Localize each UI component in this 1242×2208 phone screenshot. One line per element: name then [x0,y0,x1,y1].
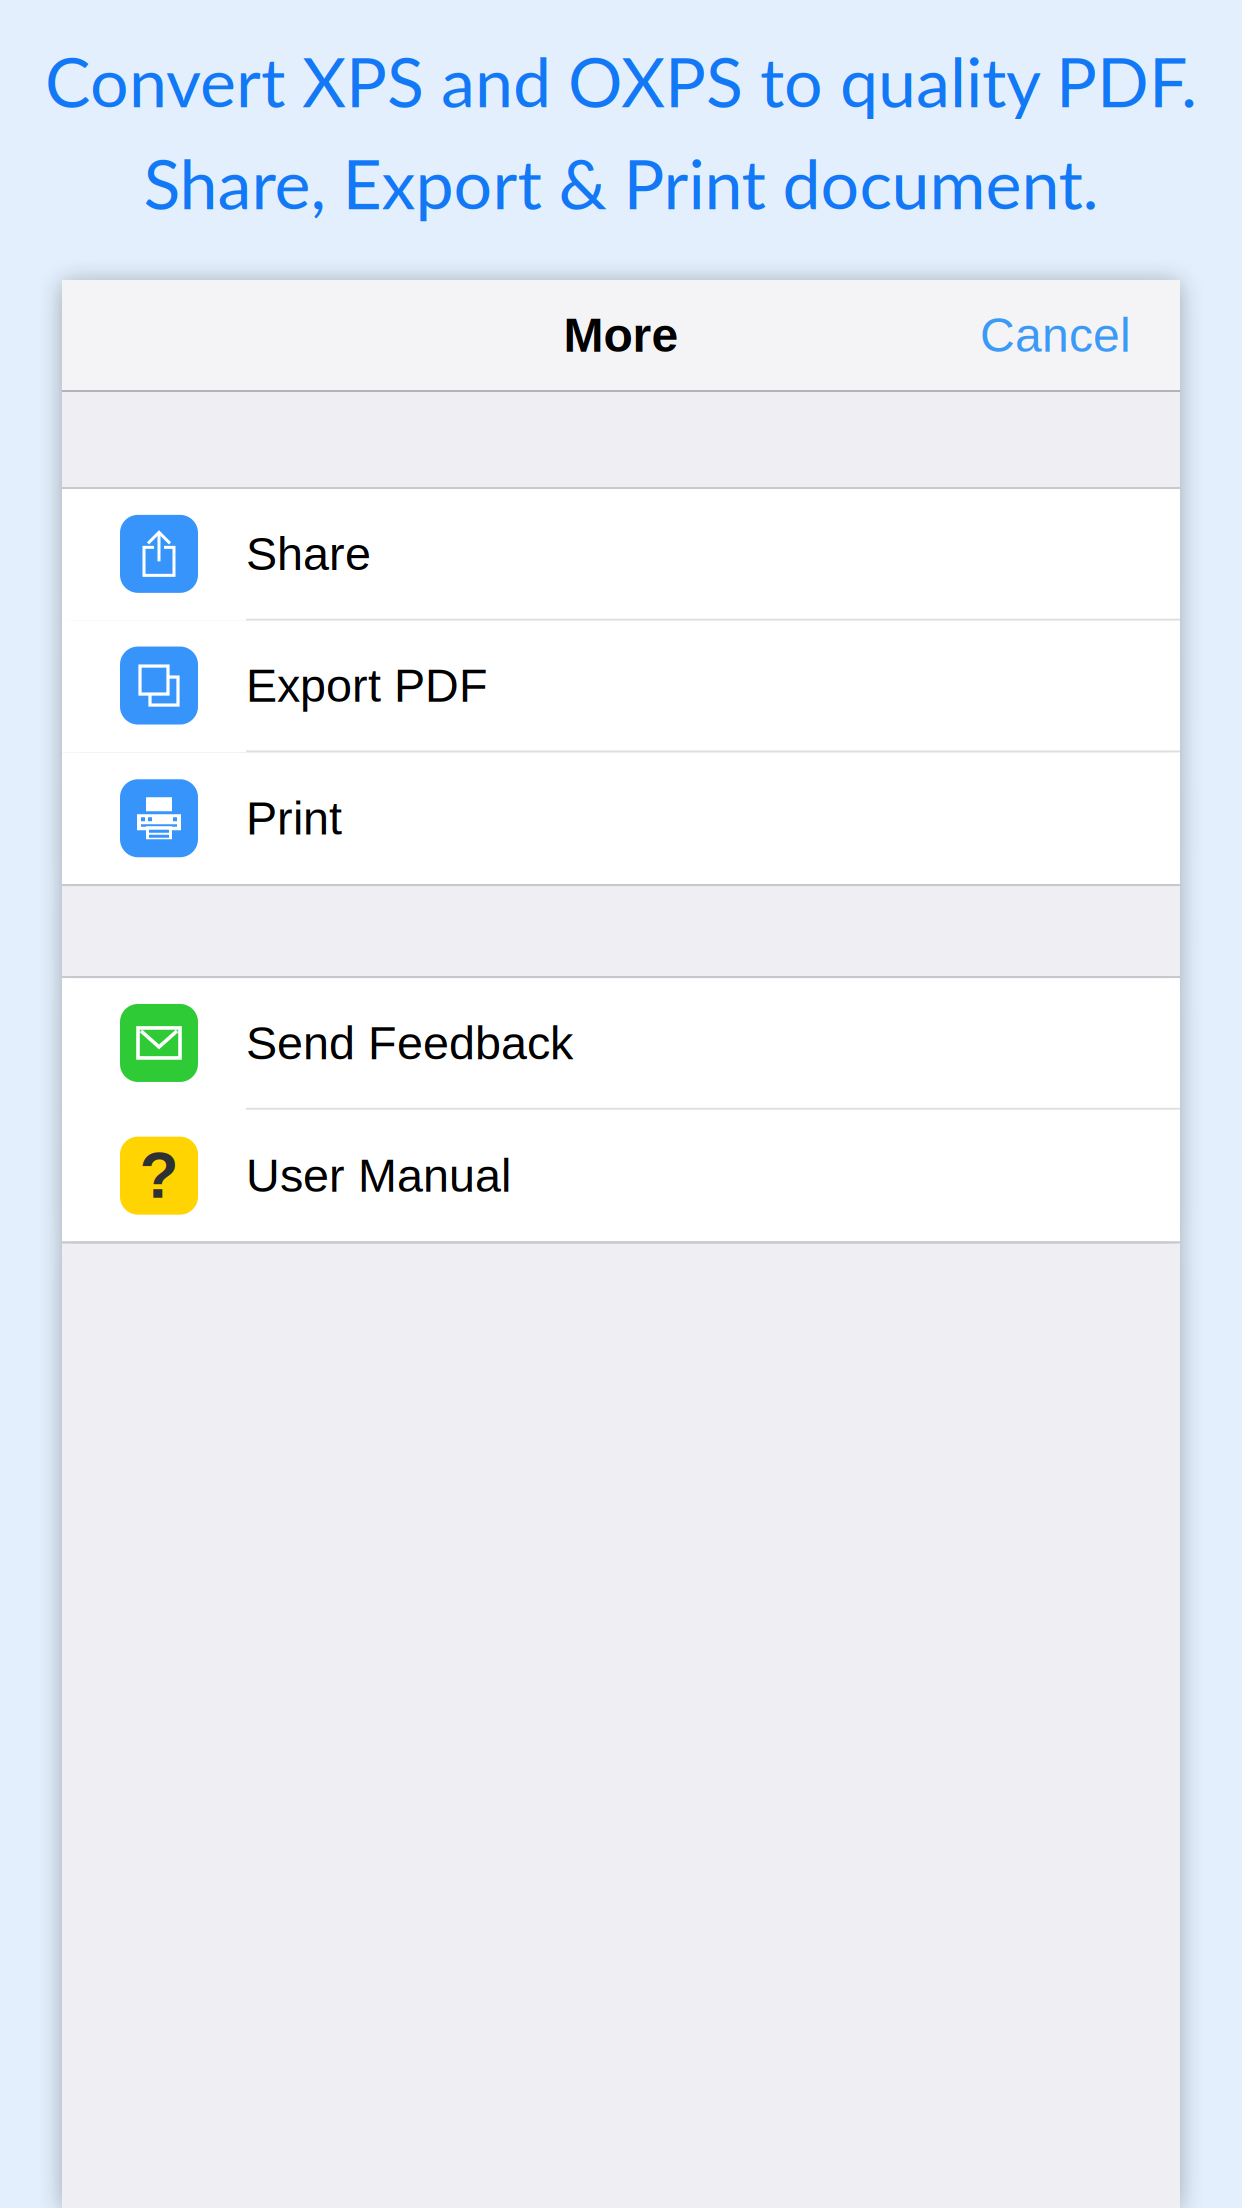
staticText: ? [139,1140,178,1211]
staticText: Cancel [980,308,1131,362]
button[interactable]: Print [62,752,1180,884]
staticText: User Manual [246,1150,511,1202]
button[interactable]: Send Feedback [62,978,1180,1110]
button[interactable]: Cancel [980,308,1180,362]
staticText: Share [246,528,371,580]
staticText: Share, Export & Print document. [143,142,1098,224]
staticText: Send Feedback [246,1017,573,1069]
staticText: Convert XPS and OXPS to quality PDF. [45,40,1197,122]
button[interactable]: ? [62,1110,1180,1241]
button[interactable]: Share [62,489,1180,621]
button[interactable]: Export PDF [62,621,1180,752]
staticText: More [563,308,678,362]
staticText: Print [246,792,342,844]
staticText: Export PDF [246,659,488,712]
